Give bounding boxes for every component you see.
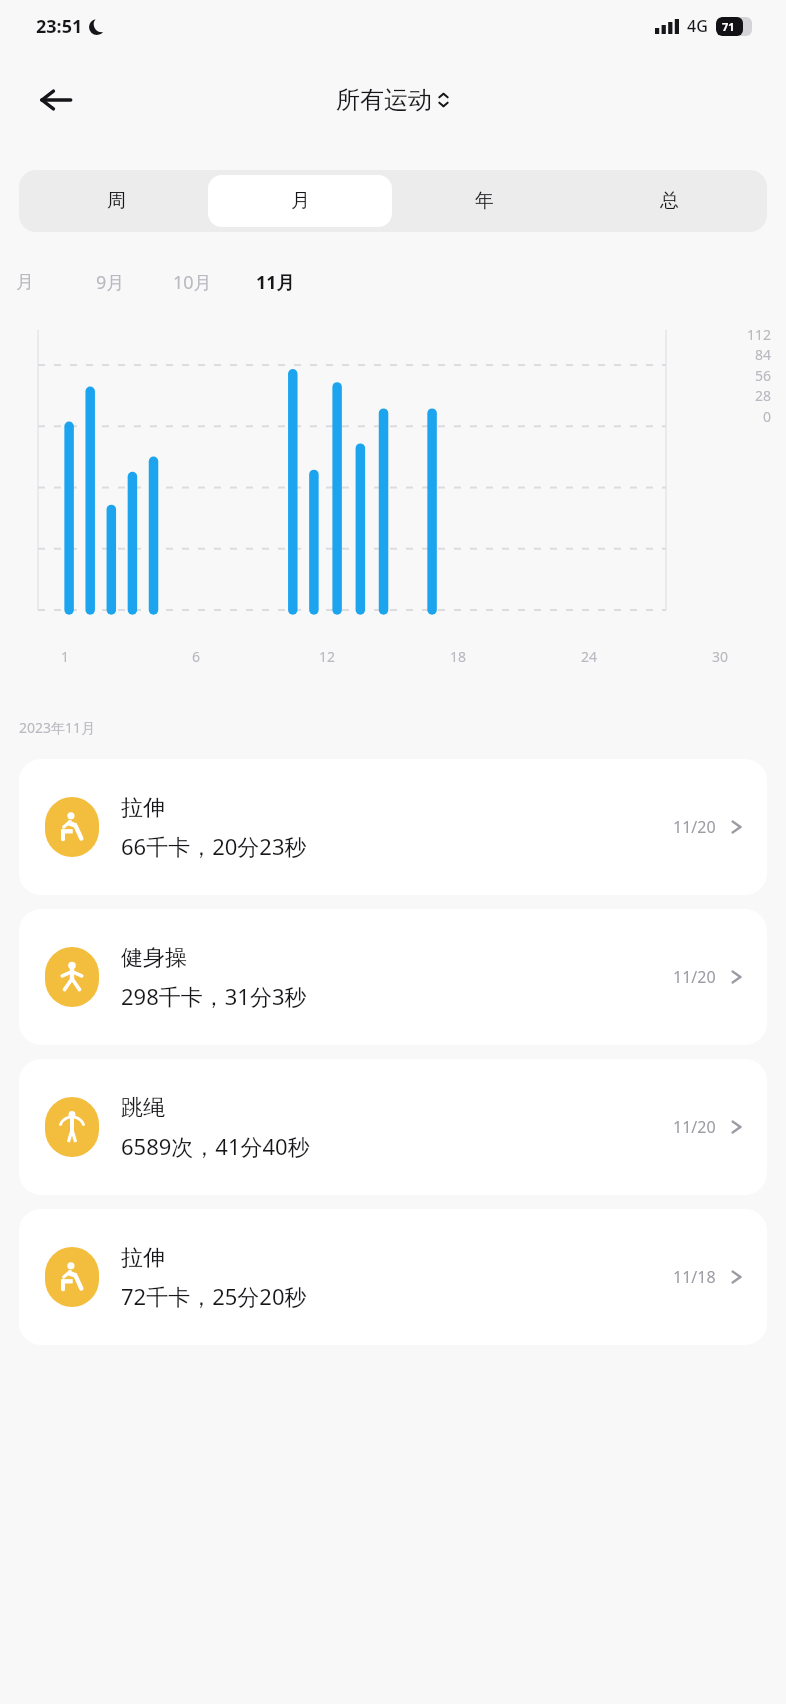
button[interactable]: 拉伸 (19, 1209, 767, 1345)
staticText: 30 (712, 647, 729, 666)
staticText: 年 (475, 189, 494, 213)
staticText: 71 (722, 19, 735, 34)
staticText: 月 (291, 189, 310, 213)
staticText: 0 (763, 407, 772, 426)
button[interactable]: 10月 (173, 270, 212, 295)
staticText: 健身操 (121, 944, 187, 972)
button[interactable]: 周 (24, 175, 208, 227)
staticText: 11/20 (673, 1116, 716, 1138)
staticText: 总 (660, 189, 679, 213)
button[interactable]: 跳绳 (19, 1059, 767, 1195)
staticText: 所有运动 (336, 85, 432, 115)
button[interactable]: Back (30, 74, 82, 126)
staticText: 拉伸 (121, 1244, 165, 1272)
staticText: 6589次，41分40秒 (121, 1131, 310, 1161)
button[interactable]: 月 (208, 175, 392, 227)
staticText: 拉伸 (121, 794, 165, 822)
button[interactable]: 健身操 (19, 909, 767, 1045)
staticText: 18 (450, 647, 467, 666)
staticText: 11月 (256, 270, 295, 295)
button[interactable]: 月 (16, 271, 34, 294)
staticText: 11/18 (673, 1266, 716, 1288)
button[interactable]: 年 (392, 175, 577, 227)
staticText: 298千卡，31分3秒 (121, 981, 307, 1011)
staticText: 11/20 (673, 966, 716, 988)
staticText: 56 (755, 366, 772, 385)
staticText: 23:51 (36, 14, 83, 39)
staticText: 2023年11月 (19, 718, 96, 737)
staticText: 84 (755, 345, 772, 364)
staticText: 72千卡，25分20秒 (121, 1281, 307, 1311)
button[interactable]: 总 (577, 175, 762, 227)
button[interactable]: 所有运动 (336, 85, 450, 115)
staticText: 9月 (96, 270, 125, 295)
staticText: 4G (687, 15, 708, 37)
staticText: 6 (192, 647, 201, 666)
staticText: 12 (319, 647, 336, 666)
staticText: 1 (61, 647, 70, 666)
staticText: 周 (107, 189, 126, 213)
staticText: 10月 (173, 270, 212, 295)
staticText: 跳绳 (121, 1094, 165, 1122)
staticText: 11/20 (673, 816, 716, 838)
staticText: 月 (16, 271, 34, 294)
button[interactable]: 9月 (96, 270, 125, 295)
staticText: 28 (755, 386, 772, 405)
staticText: 66千卡，20分23秒 (121, 831, 307, 861)
button[interactable]: 拉伸 (19, 759, 767, 895)
button[interactable]: 11月 (256, 270, 295, 295)
staticText: 112 (747, 325, 772, 344)
staticText: 24 (581, 647, 598, 666)
